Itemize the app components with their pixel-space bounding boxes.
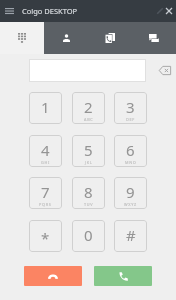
staticText: ABC (84, 117, 94, 122)
staticText: 9 (126, 182, 135, 202)
staticText: DEF (126, 117, 135, 122)
staticText: 6 (126, 140, 135, 160)
button[interactable]: 5 (72, 135, 105, 167)
button[interactable]: 1 (29, 92, 62, 124)
staticText: 4 (41, 140, 50, 160)
button[interactable]: 8 (72, 177, 105, 209)
button[interactable]: * (29, 220, 62, 252)
staticText: 3 (126, 97, 135, 117)
button[interactable]: Recents (88, 22, 132, 54)
staticText: # (126, 225, 136, 245)
staticText: 5 (84, 140, 93, 160)
button[interactable]: Backspace (157, 62, 173, 78)
staticText: MNO (125, 160, 137, 165)
button[interactable]: 4 (29, 135, 62, 167)
button[interactable]: 3 (114, 92, 147, 124)
staticText: 0 (84, 225, 93, 245)
button[interactable]: 9 (114, 177, 147, 209)
staticText: PQRS (39, 202, 52, 207)
staticText: WXYZ (124, 202, 137, 207)
staticText: 8 (84, 182, 93, 202)
staticText: 2 (84, 97, 93, 117)
button[interactable]: End call (24, 266, 82, 286)
button[interactable]: 7 (29, 177, 62, 209)
button[interactable]: Messages (132, 22, 176, 54)
button[interactable]: Menu (0, 0, 18, 22)
staticText: GHI (41, 160, 50, 165)
button[interactable]: 0 (72, 220, 105, 252)
button[interactable]: # (114, 220, 147, 252)
button[interactable]: Dialpad (0, 22, 44, 54)
button[interactable] (29, 59, 146, 82)
staticText: 7 (41, 182, 50, 202)
staticText: * (41, 228, 50, 248)
button[interactable]: 6 (114, 135, 147, 167)
staticText: Colgo DESKTOP (22, 6, 78, 16)
button[interactable]: Call (94, 266, 152, 286)
button[interactable]: 2 (72, 92, 105, 124)
staticText: 1 (41, 97, 50, 117)
staticText: JKL (85, 160, 93, 165)
button[interactable]: Contacts (44, 22, 88, 54)
button[interactable]: Minimize (152, 3, 168, 19)
button[interactable]: Close (162, 0, 176, 22)
staticText: TUV (84, 202, 94, 207)
